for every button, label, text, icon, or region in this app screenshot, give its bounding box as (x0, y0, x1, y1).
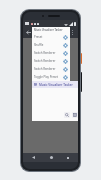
button[interactable]: Toggle Play Preset (32, 73, 70, 81)
button[interactable]: Shuffle (32, 41, 70, 49)
staticText: Switch Renderer (LWP) (34, 51, 62, 55)
button[interactable]: Configure Preset (62, 34, 68, 40)
button[interactable]: Configure Shuffle (62, 42, 68, 48)
button[interactable]: Music Visualizer Tasker Plugin (32, 81, 78, 88)
staticText: Shuffle (34, 43, 62, 47)
button[interactable]: Configure Toggle Play Preset (62, 74, 68, 80)
staticText: Switch Renderer (when a… (34, 59, 62, 63)
button[interactable]: Configure Switch Renderer (LWP) (62, 50, 68, 56)
button[interactable]: Back (26, 153, 40, 162)
button[interactable]: Switch Renderer (LWP) (32, 49, 70, 57)
button[interactable]: Search (64, 112, 70, 118)
button[interactable]: Navigate up (23, 27, 34, 38)
staticText: Toggle Play Preset (34, 75, 62, 79)
button[interactable]: Settings (57, 27, 68, 38)
staticText: Music Visualizer Tasker Plugin (39, 83, 78, 87)
button[interactable]: More options (68, 28, 77, 37)
button[interactable]: Recent apps (61, 153, 75, 162)
button[interactable]: Configure Switch Renderer (Screen… (62, 66, 68, 72)
button[interactable]: Configure Switch Renderer (when a… (62, 58, 68, 64)
staticText: Switch Renderer (Screen… (34, 67, 62, 71)
staticText: Preset (34, 35, 62, 39)
button[interactable]: Switch Renderer (Screen… (32, 65, 70, 73)
staticText: Music Visualizer Tasker Plugin (34, 28, 70, 32)
button[interactable]: Home (44, 153, 58, 162)
button[interactable]: Switch Renderer (when a… (32, 57, 70, 65)
button[interactable]: Preset (32, 33, 70, 41)
button[interactable]: View as list (72, 112, 78, 118)
